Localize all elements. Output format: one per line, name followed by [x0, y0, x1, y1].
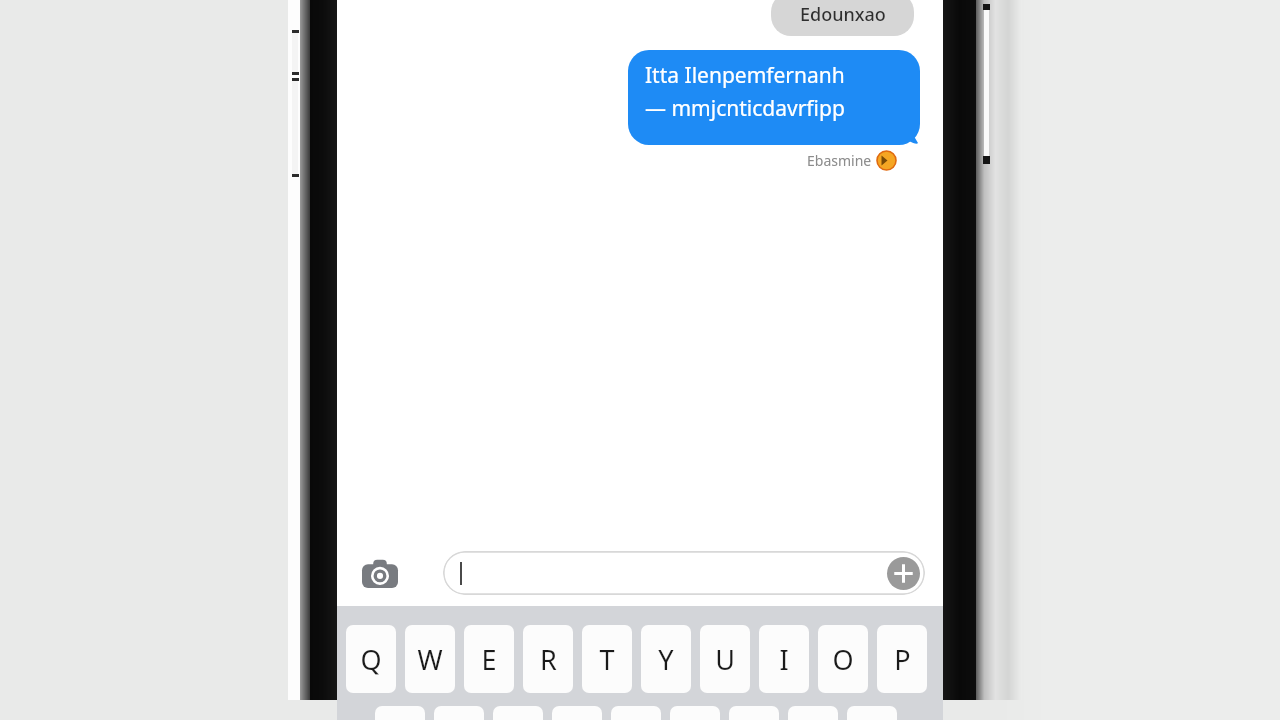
button[interactable]: G	[611, 706, 661, 720]
staticText: E	[481, 641, 497, 678]
staticText: U	[715, 641, 735, 678]
button[interactable]: Power	[984, 6, 989, 160]
staticText: Y	[658, 641, 674, 678]
button[interactable]: U	[700, 625, 750, 693]
button[interactable]: T	[582, 625, 632, 693]
staticText: Itta Ilenpemfernanh	[645, 61, 845, 90]
staticText: — mmjcnticdavrfipp	[645, 94, 845, 123]
button[interactable]: H	[670, 706, 720, 720]
button[interactable]: Q	[346, 625, 396, 693]
staticText: R	[540, 641, 557, 678]
button[interactable]: F	[552, 706, 602, 720]
button[interactable]: More options	[443, 551, 925, 595]
button[interactable]: Volume up	[292, 32, 298, 74]
button[interactable]: K	[788, 706, 838, 720]
button[interactable]: W	[405, 625, 455, 693]
button[interactable]: J	[729, 706, 779, 720]
staticText: W	[417, 641, 443, 678]
button[interactable]: Take photo	[360, 555, 400, 591]
staticText: I	[779, 641, 789, 678]
button[interactable]: I	[759, 625, 809, 693]
button[interactable]: L	[847, 706, 897, 720]
button[interactable]: Edounxao	[771, 0, 914, 36]
button[interactable]: R	[523, 625, 573, 693]
button[interactable]: S	[434, 706, 484, 720]
button[interactable]: P	[877, 625, 927, 693]
button[interactable]: Volume down	[292, 80, 298, 176]
staticText: T	[599, 641, 615, 678]
staticText: Ebasmine	[807, 151, 872, 170]
button[interactable]: O	[818, 625, 868, 693]
button[interactable]: Y	[641, 625, 691, 693]
staticText: O	[832, 641, 854, 678]
button[interactable]: Itta Ilenpemfernanh	[628, 50, 920, 145]
button[interactable]: E	[464, 625, 514, 693]
button[interactable]: D	[493, 706, 543, 720]
staticText: Q	[360, 641, 382, 678]
staticText: P	[894, 641, 911, 678]
button[interactable]: A	[375, 706, 425, 720]
staticText: Edounxao	[800, 2, 886, 27]
button[interactable]: More options	[887, 557, 920, 590]
